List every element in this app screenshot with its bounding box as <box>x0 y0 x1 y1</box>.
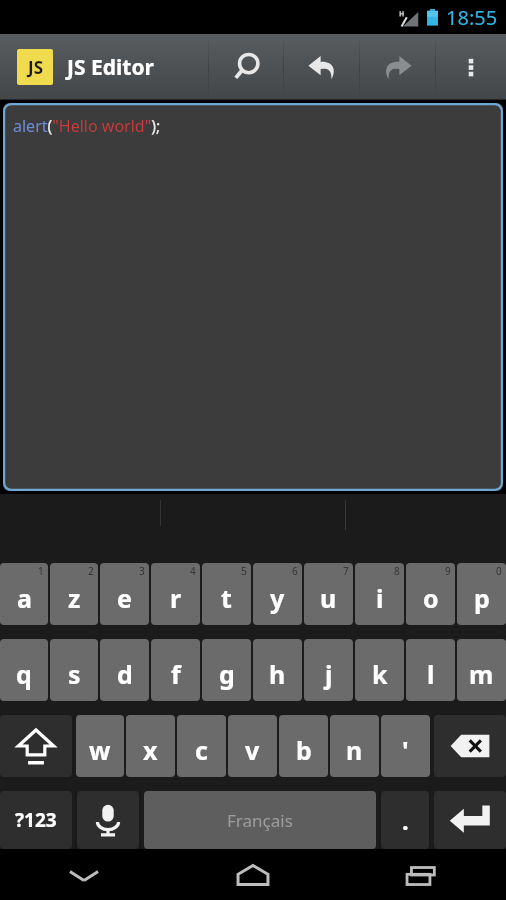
button[interactable]: x <box>126 715 175 777</box>
staticText: n <box>346 733 363 767</box>
staticText: p <box>474 581 490 615</box>
staticText: t <box>221 581 232 615</box>
staticText: d <box>117 657 133 691</box>
staticText: r <box>170 581 182 615</box>
staticText: f <box>171 657 181 691</box>
staticText: c <box>195 733 208 767</box>
staticText: ?123 <box>15 807 57 833</box>
staticText: 5 <box>241 564 247 578</box>
button[interactable]: 1 <box>0 563 48 625</box>
staticText: 2 <box>88 564 94 578</box>
button[interactable]: d <box>100 639 149 701</box>
button[interactable]: 8 <box>355 563 404 625</box>
staticText: z <box>68 581 81 615</box>
staticText: alert("Hello world"); <box>13 115 161 137</box>
button[interactable]: JS <box>0 34 208 100</box>
button[interactable]: Recent apps <box>337 849 506 900</box>
button[interactable]: ?123 <box>0 791 72 849</box>
staticText: 1 <box>38 564 44 578</box>
button[interactable]: Home <box>168 849 337 900</box>
button[interactable]: Hide keyboard <box>0 849 168 900</box>
staticText: . <box>402 804 409 837</box>
button[interactable]: 2 <box>50 563 98 625</box>
staticText: Français <box>227 809 293 832</box>
staticText: 6 <box>292 564 298 578</box>
staticText: y <box>270 581 285 615</box>
staticText: q <box>16 657 32 691</box>
staticText: w <box>89 733 111 767</box>
staticText: v <box>245 733 260 767</box>
button[interactable]: m <box>457 639 506 701</box>
button[interactable]: b <box>279 715 328 777</box>
button[interactable]: 0 <box>457 563 506 625</box>
staticText: x <box>143 733 158 767</box>
staticText: JS Editor <box>67 53 154 82</box>
button[interactable]: 4 <box>151 563 200 625</box>
button[interactable]: Voice input <box>77 791 139 849</box>
button[interactable]: alert("Hello world"); <box>3 103 503 491</box>
staticText: ' <box>402 733 409 767</box>
staticText: g <box>219 657 235 691</box>
button[interactable]: Search <box>209 34 283 100</box>
button[interactable]: 6 <box>253 563 302 625</box>
button[interactable]: q <box>0 639 48 701</box>
staticText: 9 <box>445 564 451 578</box>
staticText: h <box>269 657 286 691</box>
button[interactable]: k <box>355 639 404 701</box>
staticText: e <box>117 581 132 615</box>
button[interactable]: 3 <box>100 563 149 625</box>
staticText: m <box>469 657 494 691</box>
button[interactable]: More options <box>436 34 506 100</box>
staticText: u <box>320 581 337 615</box>
staticText: o <box>423 581 439 615</box>
button[interactable]: Enter <box>434 791 506 849</box>
button[interactable]: s <box>50 639 98 701</box>
button[interactable]: n <box>330 715 379 777</box>
staticText: l <box>427 657 435 691</box>
staticText: 3 <box>139 564 145 578</box>
button[interactable]: v <box>228 715 277 777</box>
staticText: 0 <box>496 564 502 578</box>
staticText: s <box>68 657 81 691</box>
staticText: 8 <box>394 564 400 578</box>
button[interactable]: Undo <box>284 34 359 100</box>
button[interactable]: 5 <box>202 563 251 625</box>
button[interactable]: Shift <box>0 715 72 777</box>
button[interactable]: Français <box>144 791 376 849</box>
button[interactable]: f <box>151 639 200 701</box>
staticText: i <box>376 581 384 615</box>
button[interactable]: l <box>406 639 455 701</box>
staticText: a <box>17 581 32 615</box>
button[interactable]: ' <box>381 715 430 777</box>
staticText: b <box>296 733 312 767</box>
button[interactable]: c <box>177 715 226 777</box>
button[interactable]: h <box>253 639 302 701</box>
button[interactable]: . <box>381 791 429 849</box>
staticText: k <box>372 657 388 691</box>
button[interactable]: j <box>304 639 353 701</box>
button[interactable]: 9 <box>406 563 455 625</box>
button[interactable]: Redo <box>360 34 435 100</box>
staticText: j <box>325 657 333 691</box>
button[interactable]: 7 <box>304 563 353 625</box>
staticText: JS <box>28 56 43 79</box>
button[interactable]: g <box>202 639 251 701</box>
staticText: 18:55 <box>446 4 498 31</box>
staticText: 7 <box>343 564 349 578</box>
staticText: 4 <box>190 564 196 578</box>
button[interactable]: Backspace <box>434 715 506 777</box>
button[interactable]: w <box>76 715 124 777</box>
